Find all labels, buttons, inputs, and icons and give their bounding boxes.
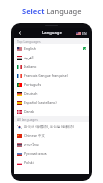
button[interactable]: Back bbox=[16, 29, 24, 37]
staticText: Chinese 中文 bbox=[24, 133, 86, 138]
staticText: Русский язык bbox=[24, 151, 86, 156]
staticText: Deutsch bbox=[24, 91, 86, 96]
staticText: Select Language bbox=[22, 6, 82, 16]
staticText: 한국어 (韓國語), 조선말 (朝鮮語) bbox=[24, 124, 86, 129]
button[interactable]: Русский язык bbox=[14, 149, 89, 158]
staticText: Italiano bbox=[24, 64, 86, 69]
button[interactable]: العربية bbox=[14, 53, 89, 62]
button[interactable]: Español (castellano) bbox=[14, 98, 89, 107]
staticText: Polski bbox=[24, 160, 86, 165]
staticText: العربية bbox=[24, 56, 86, 60]
button[interactable]: Deutsch bbox=[14, 89, 89, 98]
staticText: English bbox=[24, 46, 83, 51]
button[interactable]: ภาษาไทย bbox=[14, 140, 89, 149]
button[interactable]: EN bbox=[76, 31, 87, 36]
button[interactable]: Francais (langue française) bbox=[14, 71, 89, 80]
staticText: ภาษาไทย bbox=[24, 142, 86, 148]
button[interactable]: English bbox=[14, 44, 89, 53]
button[interactable]: Português bbox=[14, 80, 89, 89]
staticText: EN bbox=[82, 31, 87, 36]
button[interactable]: Dansk bbox=[14, 107, 89, 116]
staticText: Português bbox=[24, 82, 86, 87]
staticText: Francais (langue française) bbox=[24, 73, 86, 78]
button[interactable]: Italiano bbox=[14, 62, 89, 71]
staticText: Language bbox=[42, 30, 62, 36]
staticText: Español (castellano) bbox=[24, 100, 86, 105]
button[interactable]: Polski bbox=[14, 158, 89, 167]
staticText: Dansk bbox=[24, 109, 86, 114]
button[interactable]: Chinese 中文 bbox=[14, 131, 89, 140]
button[interactable]: 한국어 (韓國語), 조선말 (朝鮮語) bbox=[14, 122, 89, 131]
staticText: Top Languages bbox=[17, 39, 41, 43]
staticText: All languages bbox=[17, 117, 38, 121]
